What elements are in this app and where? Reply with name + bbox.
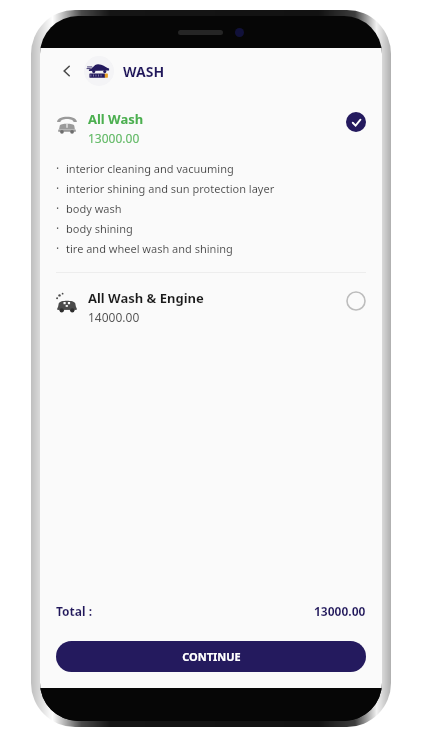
staticText: CONTINUE [182, 649, 241, 664]
button[interactable]: All Wash & Engine [40, 289, 382, 325]
staticText: · [56, 180, 66, 196]
staticText: 13000.00 [314, 603, 366, 619]
staticText: interior shining and sun protection laye… [66, 181, 275, 196]
staticText: 13000.00 [88, 130, 140, 146]
staticText: · [56, 200, 66, 216]
button[interactable]: Select All Wash & Engine [346, 291, 366, 311]
button[interactable]: CONTINUE [56, 641, 366, 672]
staticText: All Wash [88, 110, 144, 128]
staticText: 14000.00 [88, 309, 140, 325]
button[interactable]: Back [54, 58, 80, 84]
staticText: All Wash & Engine [88, 289, 204, 307]
staticText: body wash [66, 201, 122, 216]
staticText: body shining [66, 221, 133, 236]
button[interactable]: All Wash selected [346, 112, 366, 132]
staticText: · [56, 160, 66, 176]
staticText: · [56, 240, 66, 256]
staticText: WASH [123, 62, 165, 81]
staticText: · [56, 220, 66, 236]
button[interactable]: All Wash [40, 110, 382, 260]
staticText: tire and wheel wash and shining [66, 241, 233, 256]
staticText: Total : [56, 603, 93, 619]
staticText: interior cleaning and vacuuming [66, 161, 234, 176]
